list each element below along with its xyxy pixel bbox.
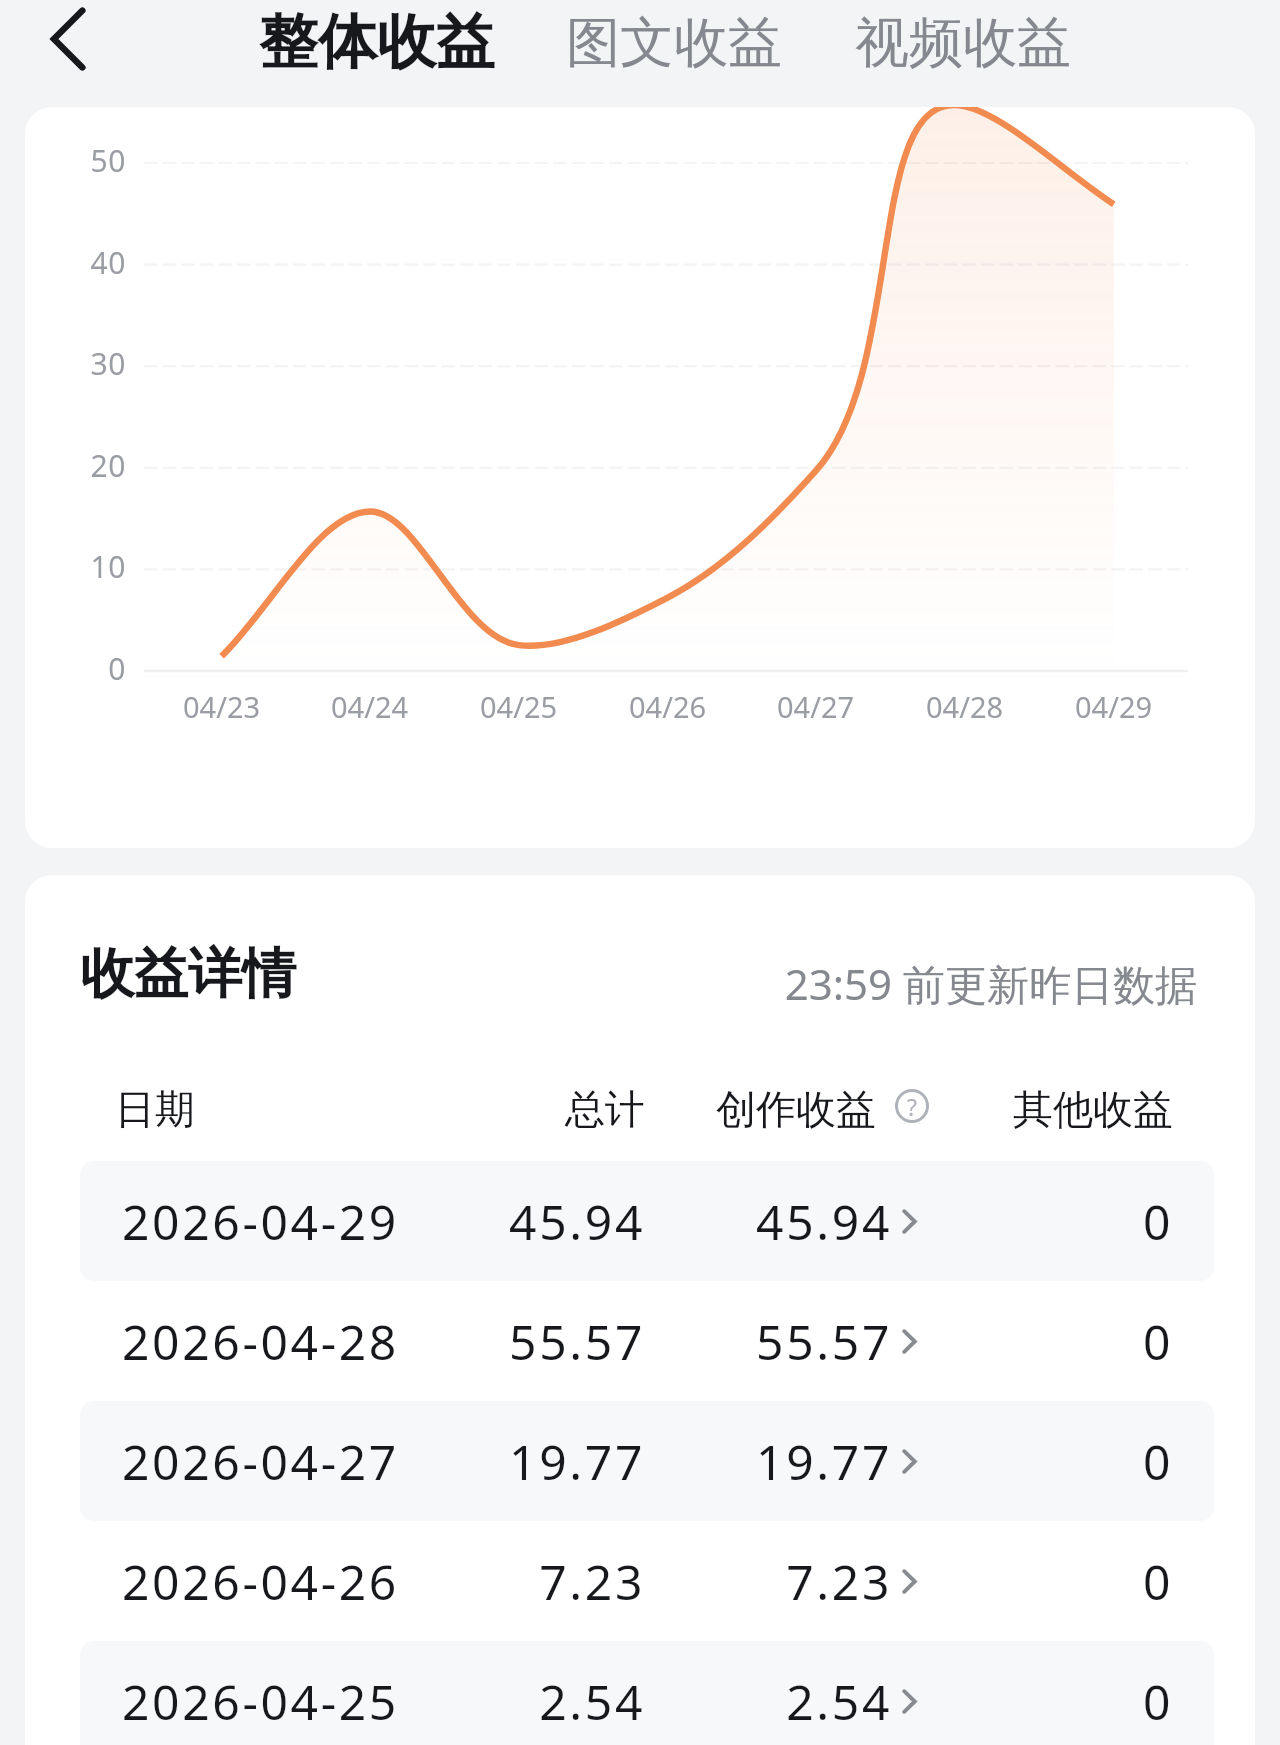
button[interactable]: 视频收益	[855, 9, 1071, 77]
staticText: 0	[1143, 1309, 1174, 1374]
staticText: 0	[1143, 1669, 1174, 1734]
staticText: 2026-04-28	[122, 1309, 399, 1374]
staticText: 总计	[565, 1084, 645, 1134]
staticText: 19.77	[692, 1429, 892, 1494]
staticText: 30	[25, 343, 126, 384]
staticText: 2.54	[692, 1669, 892, 1734]
staticText: 视频收益	[855, 9, 1071, 77]
staticText: 04/23	[183, 687, 261, 726]
staticText: 2026-04-29	[122, 1189, 399, 1254]
button[interactable]: 图文收益	[566, 9, 782, 77]
staticText: 2026-04-25	[122, 1669, 399, 1734]
staticText: 0	[1143, 1189, 1174, 1254]
button[interactable]: View creation earnings details	[892, 1684, 926, 1718]
staticText: 2026-04-27	[122, 1429, 399, 1494]
button[interactable]: 2026-04-29	[80, 1161, 1214, 1281]
button[interactable]: 整体收益	[259, 5, 495, 79]
button[interactable]: View creation earnings details	[892, 1324, 926, 1358]
button[interactable]: 2026-04-27	[80, 1401, 1214, 1521]
button[interactable]: View creation earnings details	[892, 1564, 926, 1598]
staticText: 04/28	[926, 687, 1004, 726]
button[interactable]: 2026-04-25	[80, 1641, 1214, 1745]
staticText: 整体收益	[259, 5, 495, 79]
staticText: 50	[25, 140, 126, 181]
staticText: 19.77	[445, 1429, 645, 1494]
staticText: 0	[1143, 1549, 1174, 1614]
staticText: 04/25	[480, 687, 558, 726]
button[interactable]: 2026-04-28	[80, 1281, 1214, 1401]
button[interactable]: View creation earnings details	[892, 1204, 926, 1238]
staticText: 55.57	[445, 1309, 645, 1374]
staticText: 2.54	[445, 1669, 645, 1734]
button[interactable]: Info about creation earnings	[892, 1086, 932, 1126]
staticText: 7.23	[692, 1549, 892, 1614]
staticText: 图文收益	[566, 9, 782, 77]
staticText: 20	[25, 445, 126, 486]
staticText: 10	[25, 546, 126, 587]
button[interactable]: Back	[30, 1, 106, 77]
staticText: 04/26	[629, 687, 707, 726]
staticText: 收益详情	[80, 940, 296, 1008]
staticText: 45.94	[445, 1189, 645, 1254]
staticText: 40	[25, 242, 126, 283]
staticText: 23:59 前更新昨日数据	[25, 955, 1197, 1012]
staticText: 45.94	[692, 1189, 892, 1254]
staticText: 04/24	[331, 687, 409, 726]
staticText: 日期	[115, 1084, 195, 1134]
staticText: 2026-04-26	[122, 1549, 399, 1614]
staticText: 0	[1143, 1429, 1174, 1494]
button[interactable]: 2026-04-26	[80, 1521, 1214, 1641]
staticText: 创作收益	[716, 1084, 876, 1134]
staticText: 其他收益	[1013, 1084, 1173, 1134]
staticText: 0	[25, 648, 126, 689]
staticText: 04/29	[1075, 687, 1153, 726]
staticText: 7.23	[445, 1549, 645, 1614]
staticText: ?	[907, 1091, 917, 1122]
button[interactable]: View creation earnings details	[892, 1444, 926, 1478]
staticText: 55.57	[692, 1309, 892, 1374]
staticText: 04/27	[777, 687, 855, 726]
